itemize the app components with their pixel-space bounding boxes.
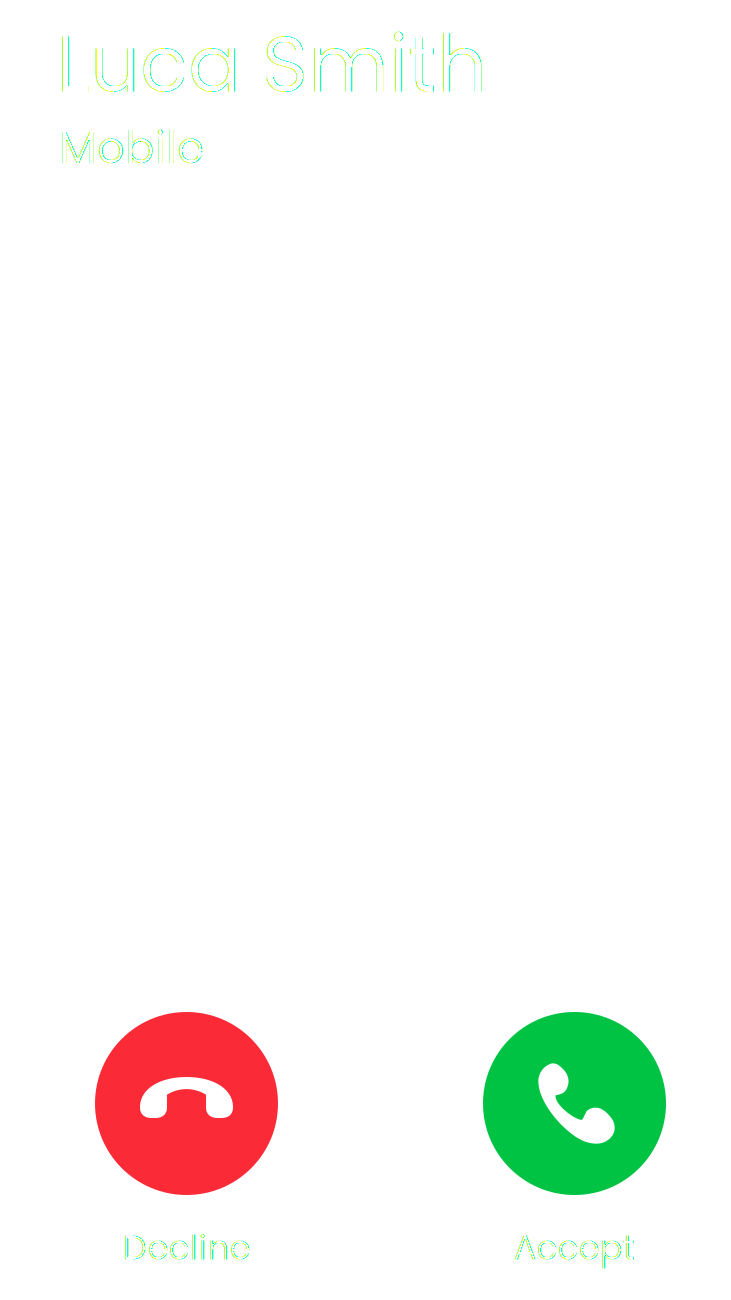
staticText: Accept [513, 1223, 635, 1271]
button[interactable]: Accept call [483, 1012, 666, 1271]
staticText: Luca Smith [56, 9, 487, 119]
staticText: Mobile [59, 117, 204, 179]
staticText: Decline [122, 1223, 250, 1271]
button[interactable]: Decline call [95, 1012, 278, 1271]
